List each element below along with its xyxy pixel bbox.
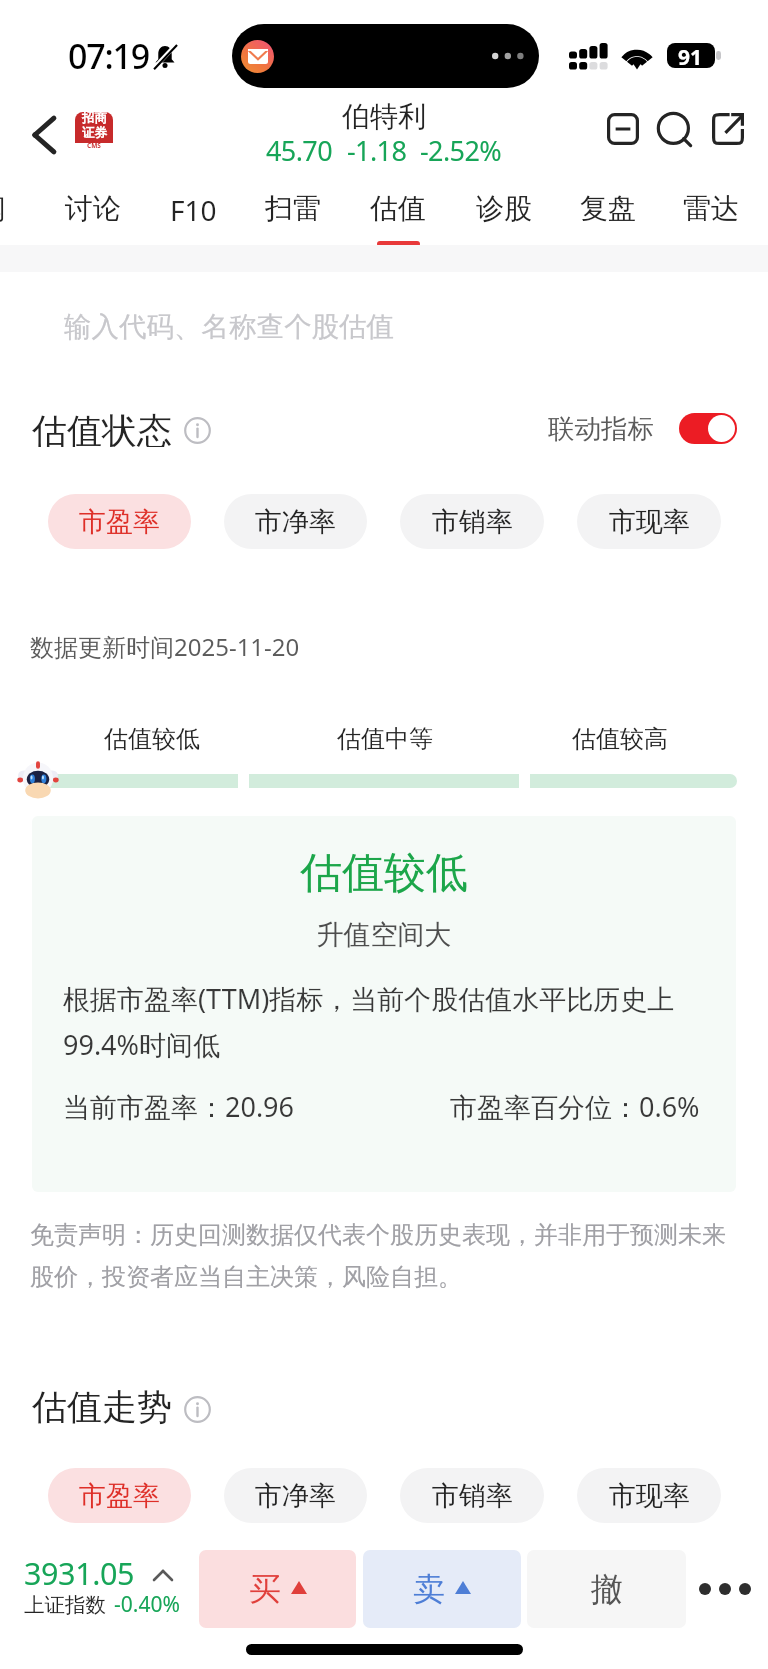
staticText: 升值空间大 — [32, 918, 736, 952]
staticText: 雷达 — [683, 191, 739, 226]
button[interactable]: 复盘 — [558, 175, 658, 245]
button[interactable]: 撤 — [527, 1550, 686, 1628]
button[interactable]: 卖 — [363, 1550, 521, 1628]
button[interactable]: China Merchants Securities — [75, 112, 113, 151]
staticText: 闻 — [0, 191, 6, 226]
button[interactable]: 扫雷 — [243, 175, 343, 245]
button[interactable]: 市盈率 — [48, 1468, 191, 1523]
staticText: 免责声明：历史回测数据仅代表个股历史表现，并非用于预测未来股价，投资者应当自主决… — [30, 1220, 736, 1292]
button[interactable]: 诊股 — [454, 175, 554, 245]
button[interactable]: 市销率 — [400, 494, 544, 549]
staticText: 卖 — [413, 1569, 445, 1609]
staticText: 扫雷 — [265, 191, 321, 226]
button[interactable]: 市现率 — [577, 1468, 721, 1523]
staticText: 估值较高 — [572, 724, 668, 754]
button[interactable]: More — [690, 1550, 760, 1628]
button[interactable]: 市净率 — [224, 494, 367, 549]
staticText: CMS — [87, 141, 101, 150]
staticText: 估值 — [370, 191, 426, 226]
staticText: 根据市盈率(TTM)指标，当前个股估值水平比历史上99.4%时间低 — [63, 980, 711, 1063]
staticText: F10 — [170, 191, 217, 229]
staticText: 市现率 — [609, 505, 690, 539]
staticText: 伯特利 — [342, 99, 426, 134]
staticText: 联动指标 — [548, 412, 654, 445]
button[interactable]: 闻 — [0, 175, 42, 245]
staticText: 估值走势 — [32, 1385, 172, 1429]
staticText: 45.70 — [266, 132, 333, 169]
button[interactable]: 市销率 — [400, 1468, 544, 1523]
staticText: 证券 — [82, 125, 107, 141]
button[interactable]: Back — [18, 109, 70, 161]
button[interactable]: 估值 — [348, 175, 448, 245]
staticText: 市现率 — [609, 1479, 690, 1513]
button[interactable]: F10 — [143, 175, 243, 245]
staticText: 输入代码、名称查个股估值 — [64, 310, 394, 345]
staticText: 07:19 — [68, 33, 150, 79]
button[interactable]: 市盈率 — [48, 494, 191, 549]
staticText: 诊股 — [476, 191, 532, 226]
staticText: 撤 — [591, 1569, 623, 1609]
staticText: 招商 — [82, 112, 107, 126]
button[interactable]: 讨论 — [43, 175, 143, 245]
button[interactable]: Minimize — [599, 105, 647, 153]
staticText: 市净率 — [255, 1479, 336, 1513]
staticText: 估值较低 — [32, 847, 736, 900]
button[interactable]: Share — [704, 105, 752, 153]
button[interactable]: 买 — [199, 1550, 356, 1628]
staticText: 估值较低 — [104, 724, 200, 754]
staticText: 上证指数 — [24, 1592, 106, 1618]
button[interactable]: 联动指标 — [548, 412, 737, 445]
staticText: 市盈率 — [79, 1479, 160, 1513]
staticText: 复盘 — [580, 191, 636, 226]
staticText: -2.52% — [420, 132, 502, 169]
staticText: -1.18 — [347, 132, 407, 169]
staticText: 市销率 — [432, 505, 513, 539]
button[interactable]: 市净率 — [224, 1468, 367, 1523]
button[interactable]: Search — [650, 105, 698, 153]
staticText: 91 — [678, 43, 703, 68]
staticText: 市盈率 — [79, 505, 160, 539]
staticText: 估值状态 — [32, 409, 172, 447]
staticText: 3931.05 — [24, 1552, 135, 1594]
staticText: 市销率 — [432, 1479, 513, 1513]
staticText: 市盈率百分位：0.6% — [450, 1088, 700, 1125]
staticText: -0.40% — [114, 1590, 180, 1619]
button[interactable]: 输入代码、名称查个股估值 — [0, 290, 768, 365]
staticText: 当前市盈率：20.96 — [63, 1088, 295, 1125]
staticText: 买 — [249, 1569, 281, 1609]
staticText: 估值中等 — [337, 724, 433, 754]
button[interactable]: 3931.05 — [20, 1543, 200, 1621]
staticText: 讨论 — [65, 191, 121, 226]
button[interactable]: 雷达 — [661, 175, 761, 245]
button[interactable]: 市现率 — [577, 494, 721, 549]
staticText: 市净率 — [255, 505, 336, 539]
staticText: 数据更新时间2025-11-20 — [30, 630, 300, 663]
